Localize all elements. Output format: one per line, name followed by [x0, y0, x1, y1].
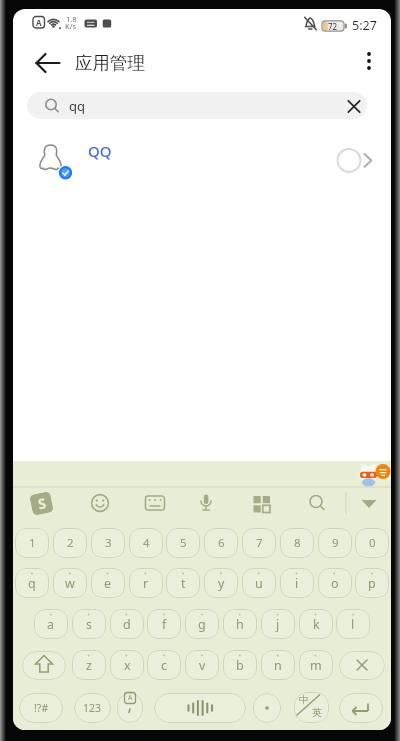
button[interactable]: 4	[129, 528, 163, 558]
button[interactable]	[28, 43, 68, 83]
button[interactable]	[27, 92, 367, 119]
button[interactable]: o	[318, 568, 352, 598]
button[interactable]: s	[72, 609, 106, 639]
button[interactable]	[339, 651, 385, 680]
staticText: d	[123, 616, 131, 633]
staticText: 6	[218, 535, 225, 551]
staticText: g	[198, 616, 206, 633]
button[interactable]: q	[15, 568, 49, 598]
staticText: f	[162, 616, 167, 633]
button[interactable]: 123	[74, 693, 111, 723]
button[interactable]	[331, 142, 367, 178]
staticText: e	[104, 575, 112, 592]
button[interactable]: 0	[355, 528, 389, 558]
button[interactable]	[253, 693, 281, 723]
button[interactable]	[154, 693, 246, 723]
staticText: w	[65, 575, 75, 592]
staticText: 123	[83, 701, 102, 715]
button[interactable]: a	[34, 609, 68, 639]
button[interactable]: u	[242, 568, 276, 598]
staticText: 0	[369, 535, 376, 551]
button[interactable]: w	[53, 568, 87, 598]
button[interactable]	[300, 486, 334, 520]
staticText: x	[124, 657, 131, 674]
button[interactable]	[22, 651, 66, 680]
button[interactable]: x	[110, 650, 144, 680]
button[interactable]: b	[223, 650, 257, 680]
button[interactable]: !?#	[19, 693, 63, 723]
button[interactable]: i	[280, 568, 314, 598]
staticText: 英	[312, 706, 322, 719]
staticText: 5	[180, 535, 187, 551]
staticText: i	[295, 575, 299, 592]
button[interactable]: 3	[91, 528, 125, 558]
button[interactable]: t	[166, 568, 200, 598]
staticText: 7	[256, 535, 263, 551]
staticText: a	[47, 616, 55, 633]
staticText: A	[36, 17, 42, 28]
staticText: k	[313, 616, 320, 633]
button[interactable]: 6	[204, 528, 238, 558]
button[interactable]: 5	[166, 528, 200, 558]
staticText: y	[218, 575, 225, 592]
staticText: c	[161, 657, 168, 674]
staticText: 1.8	[66, 14, 77, 24]
button[interactable]	[117, 693, 143, 723]
button[interactable]	[24, 486, 58, 520]
staticText: s	[86, 616, 92, 633]
button[interactable]	[352, 486, 386, 520]
staticText: S	[36, 493, 48, 513]
button[interactable]	[339, 93, 369, 120]
staticText: 5:27	[352, 17, 377, 34]
staticText: q	[28, 575, 36, 592]
button[interactable]: d	[110, 609, 144, 639]
staticText: u	[255, 575, 263, 592]
button[interactable]	[351, 41, 387, 81]
button[interactable]: m	[299, 650, 333, 680]
staticText: v	[199, 657, 206, 674]
button[interactable]: n	[261, 650, 295, 680]
button[interactable]	[138, 486, 172, 520]
button[interactable]: 7	[242, 528, 276, 558]
staticText: 72	[328, 21, 338, 32]
staticText: QQ	[88, 141, 112, 161]
button[interactable]: f	[147, 609, 181, 639]
button[interactable]	[339, 693, 383, 723]
staticText: !?#	[34, 701, 49, 715]
button[interactable]	[83, 486, 117, 520]
button[interactable]: l	[336, 609, 370, 639]
staticText: qq	[69, 97, 85, 115]
button[interactable]: 2	[53, 528, 87, 558]
button[interactable]	[354, 460, 388, 490]
button[interactable]: 8	[280, 528, 314, 558]
button[interactable]: h	[223, 609, 257, 639]
button[interactable]: c	[147, 650, 181, 680]
button[interactable]: 9	[318, 528, 352, 558]
button[interactable]: 1	[15, 528, 49, 558]
staticText: z	[86, 657, 92, 674]
staticText: 3	[105, 535, 112, 551]
staticText: b	[236, 657, 244, 674]
button[interactable]: v	[185, 650, 219, 680]
button[interactable]: S	[29, 491, 54, 516]
button[interactable]: k	[299, 609, 333, 639]
button[interactable]: y	[204, 568, 238, 598]
button[interactable]	[246, 486, 280, 520]
button[interactable]: z	[72, 650, 106, 680]
staticText: 应用管理	[75, 52, 145, 74]
button[interactable]	[189, 486, 223, 520]
staticText: r	[143, 575, 149, 592]
button[interactable]: p	[355, 568, 389, 598]
button[interactable]: g	[185, 609, 219, 639]
button[interactable]: r	[129, 568, 163, 598]
staticText: l	[351, 616, 355, 633]
button[interactable]: e	[91, 568, 125, 598]
button[interactable]: j	[261, 609, 295, 639]
button[interactable]	[294, 692, 329, 723]
staticText: p	[368, 575, 376, 592]
staticText: A	[128, 693, 133, 703]
button[interactable]	[13, 132, 387, 188]
staticText: 4	[143, 535, 150, 551]
staticText: n	[274, 657, 282, 674]
staticText: 1	[29, 535, 36, 551]
